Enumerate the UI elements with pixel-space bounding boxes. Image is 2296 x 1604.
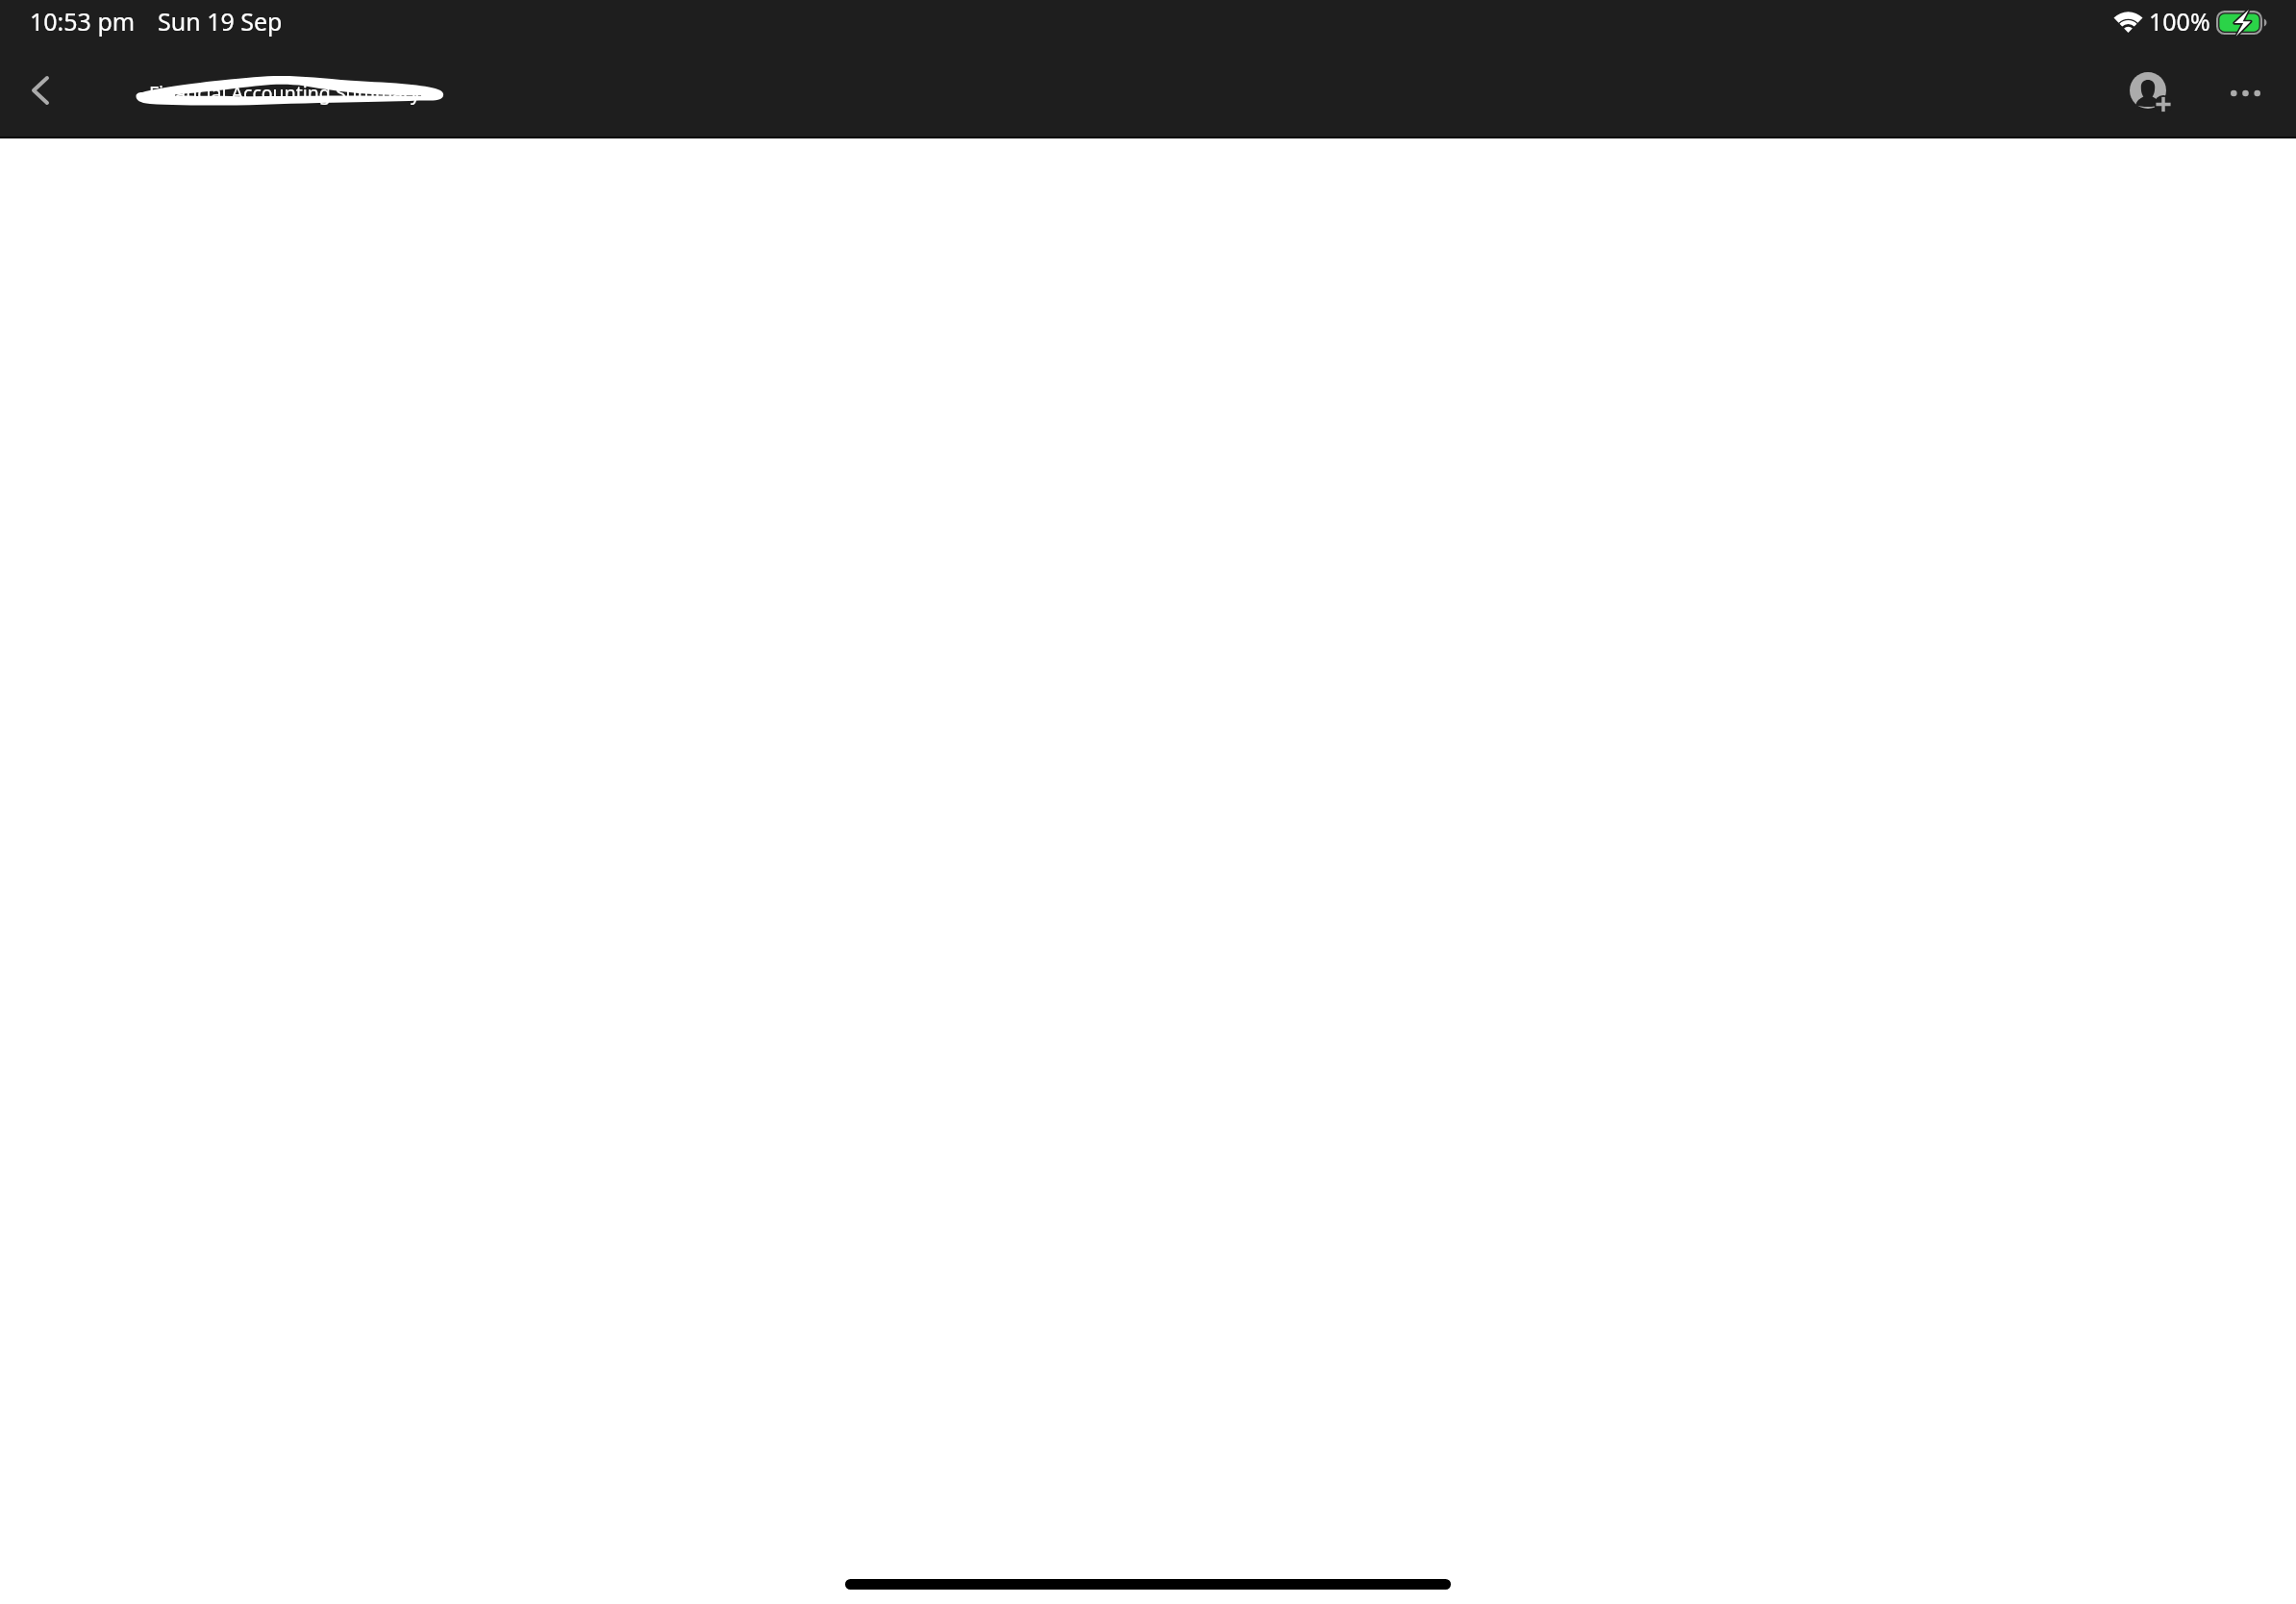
staticText: 100% [2149,5,2210,38]
button[interactable]: More options [2219,67,2271,119]
button[interactable]: Add person [2126,68,2180,122]
button[interactable]: Back [13,63,67,117]
staticText: Sun 19 Sep [158,5,283,38]
staticText: 10:53 pm [30,5,136,38]
button[interactable]: Financial Accounting Summary [135,67,447,110]
staticText: Financial Accounting Summary [149,80,421,106]
